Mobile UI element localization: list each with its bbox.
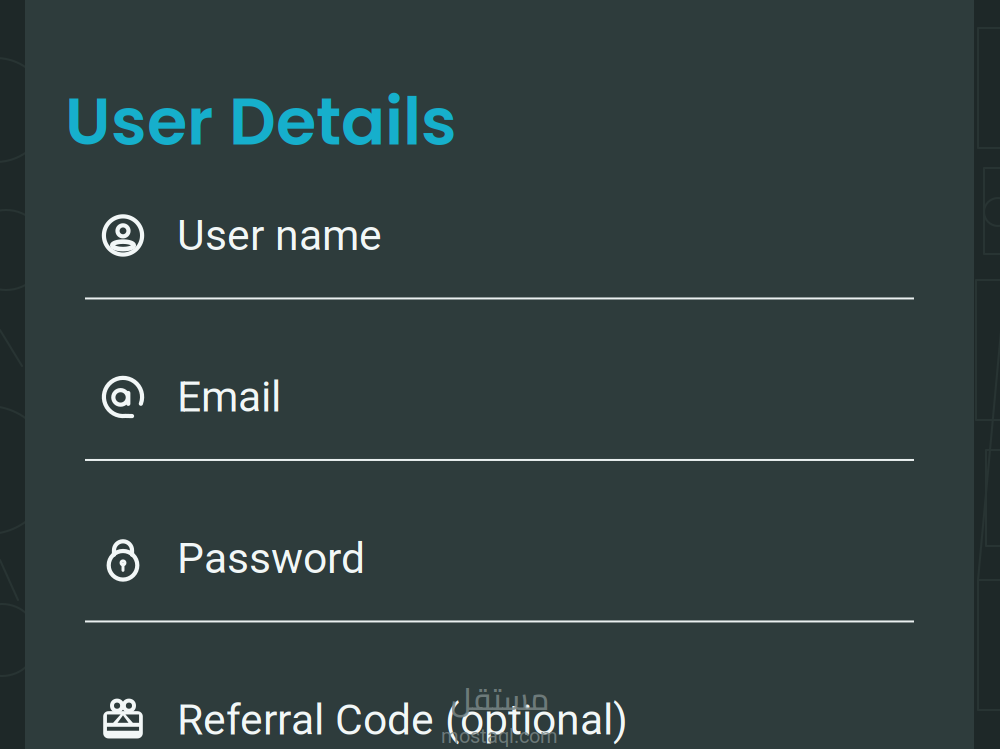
staticText: Password — [177, 533, 365, 583]
button[interactable]: Password — [25, 496, 974, 658]
button[interactable]: User name — [25, 173, 974, 335]
staticText: مستقل — [450, 670, 549, 727]
button[interactable]: Email — [25, 335, 974, 496]
staticText: Referral Code (optional) — [177, 695, 628, 745]
staticText: User Details — [65, 76, 457, 167]
staticText: User name — [177, 210, 382, 260]
staticText: mostaql.com — [441, 724, 558, 748]
button[interactable]: Referral Code (optional) — [25, 658, 974, 749]
staticText: Email — [177, 372, 281, 422]
